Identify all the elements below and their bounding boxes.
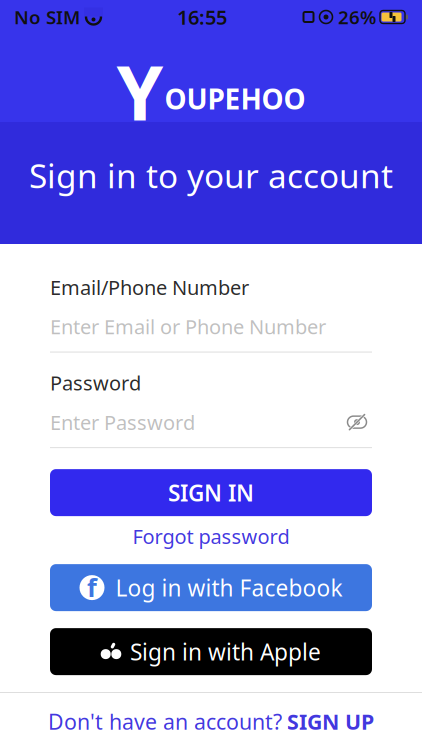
staticText: Email/Phone Number xyxy=(50,274,249,301)
button[interactable]: f xyxy=(50,564,372,611)
staticText: Enter Email or Phone Number xyxy=(50,313,326,340)
staticText: Sign in to your account xyxy=(29,153,393,197)
staticText: SIGN UP xyxy=(287,707,374,736)
staticText xyxy=(315,7,319,27)
button[interactable]: Forgot password xyxy=(50,519,372,553)
staticText: No SIM xyxy=(14,5,80,29)
staticText: OUPEHOO xyxy=(164,80,305,117)
staticText: Don't have an account? xyxy=(48,707,282,736)
staticText xyxy=(80,5,85,28)
staticText: Sign in with Apple xyxy=(130,637,321,667)
staticText: 16:55 xyxy=(177,4,227,30)
staticText: Forgot password xyxy=(132,523,289,549)
staticText: f xyxy=(87,570,97,604)
staticText: Password xyxy=(50,370,141,396)
button[interactable]: Show password xyxy=(342,410,372,434)
staticText: 26% xyxy=(333,5,376,29)
button[interactable]: Don't have an account? xyxy=(0,693,422,750)
button[interactable]: Sign in with Apple xyxy=(50,628,372,675)
staticText: Log in with Facebook xyxy=(115,573,342,603)
staticText xyxy=(376,7,380,27)
staticText: Y xyxy=(116,42,163,141)
staticText: SIGN IN xyxy=(168,478,254,508)
button[interactable]: SIGN IN xyxy=(50,469,372,516)
staticText: Enter Password xyxy=(50,409,195,435)
